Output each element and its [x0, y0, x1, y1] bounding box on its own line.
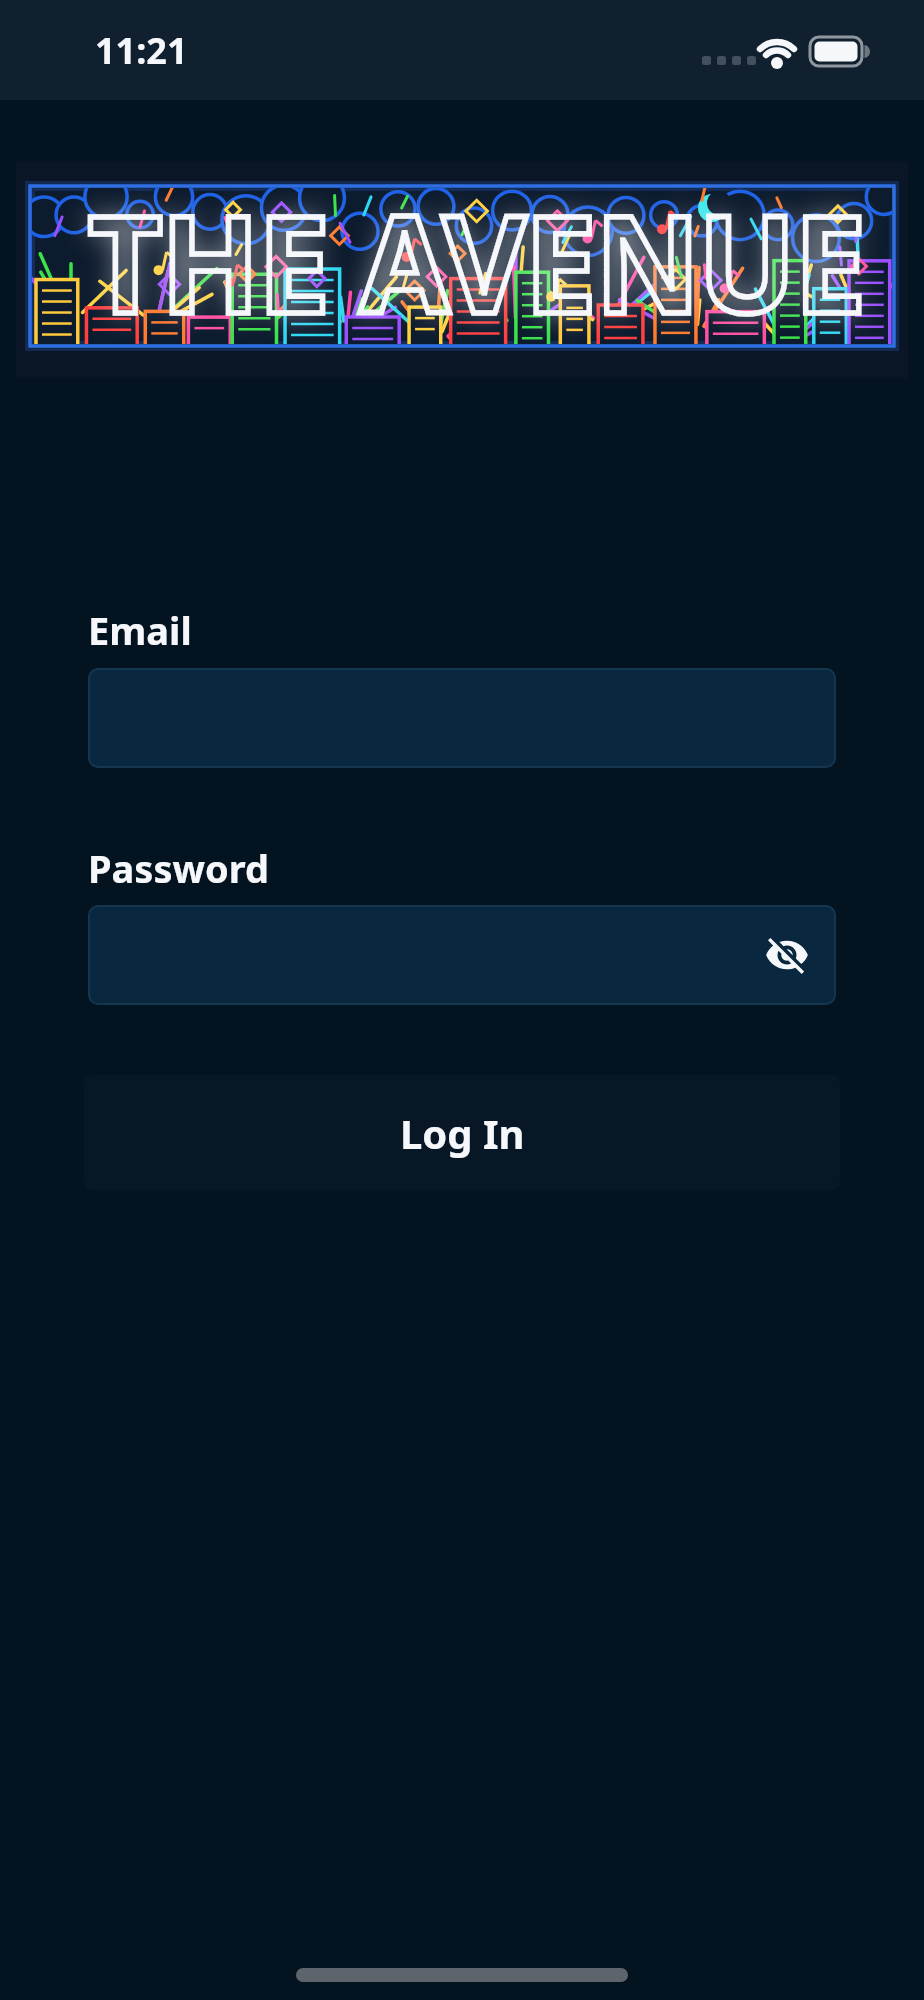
button[interactable]: [88, 668, 836, 768]
staticText: Email: [88, 604, 192, 656]
staticText: THE AVENUE: [88, 170, 865, 353]
staticText: Log In: [400, 1106, 525, 1160]
staticText: Password: [88, 842, 270, 894]
staticText: 11:21: [95, 26, 188, 75]
button[interactable]: Log In: [84, 1075, 840, 1190]
button[interactable]: [88, 905, 836, 1005]
